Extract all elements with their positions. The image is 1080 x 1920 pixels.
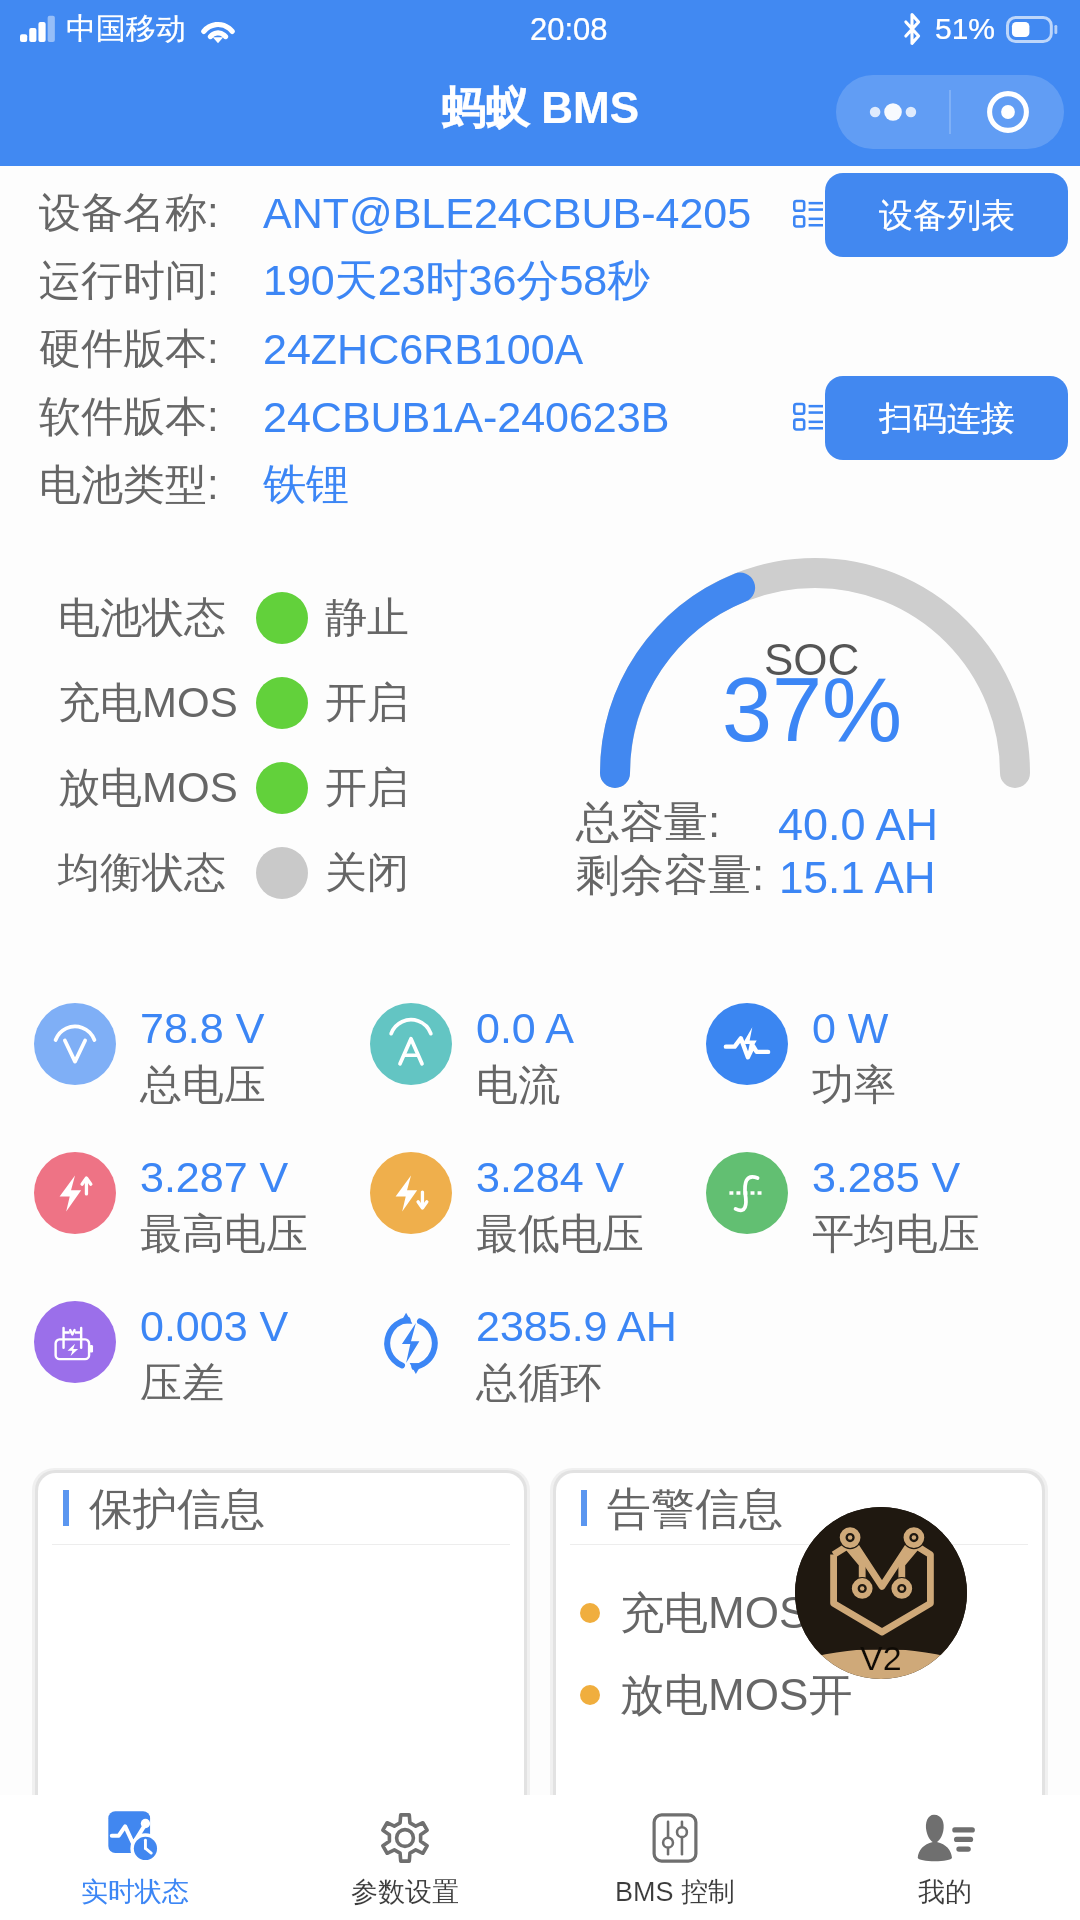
staticText: 运行时间:: [39, 255, 219, 308]
staticText: 铁锂: [263, 458, 349, 512]
button[interactable]: 最低电压: [370, 1152, 452, 1234]
staticText: 190天23时36分58秒: [263, 254, 651, 308]
staticText: 充电MOS开: [620, 1586, 853, 1641]
staticText: 蚂蚁 BMS: [441, 81, 639, 136]
staticText: V2: [860, 1639, 902, 1677]
button[interactable]: 总电压: [34, 1003, 116, 1085]
button[interactable]: 电流: [370, 1003, 452, 1085]
staticText: 40.0 AH: [778, 799, 939, 849]
staticText: 剩余容量:: [576, 848, 765, 903]
staticText: 压差: [140, 1357, 224, 1410]
staticText: 0 W: [812, 1004, 889, 1052]
staticText: 电池状态: [58, 592, 226, 645]
staticText: 总容量:: [576, 795, 721, 850]
staticText: 功率: [812, 1059, 896, 1112]
button[interactable]: 压差: [34, 1301, 116, 1383]
staticText: 扫码连接: [879, 397, 1015, 440]
staticText: 78.8 V: [140, 1004, 265, 1052]
staticText: 放电MOS开: [620, 1668, 853, 1723]
staticText: 3.284 V: [476, 1153, 625, 1201]
button[interactable]: 我的: [810, 1795, 1080, 1920]
button[interactable]: More options: [836, 75, 949, 149]
staticText: 电流: [476, 1059, 560, 1112]
staticText: 放电MOS: [58, 762, 238, 815]
staticText: 3.285 V: [812, 1153, 961, 1201]
staticText: 0.003 V: [140, 1302, 289, 1350]
staticText: 设备列表: [879, 194, 1015, 237]
staticText: 24ZHC6RB100A: [263, 325, 584, 373]
staticText: 设备名称:: [39, 187, 219, 240]
button[interactable]: 总循环: [370, 1301, 452, 1383]
staticText: 参数设置: [351, 1875, 459, 1909]
staticText: 保护信息: [89, 1482, 265, 1534]
staticText: 24CBUB1A-240623B: [263, 393, 670, 441]
button[interactable]: 参数设置: [270, 1795, 540, 1920]
button[interactable]: 平均电压: [706, 1152, 788, 1234]
staticText: 0.0 A: [476, 1004, 575, 1052]
staticText: 硬件版本:: [39, 323, 219, 376]
staticText: 37%: [722, 660, 903, 761]
staticText: 20:08: [530, 12, 608, 47]
staticText: 总电压: [140, 1059, 266, 1112]
staticText: 中国移动: [66, 10, 186, 48]
staticText: 51%: [935, 12, 996, 46]
staticText: 告警信息: [607, 1482, 783, 1534]
staticText: 均衡状态: [58, 847, 226, 900]
staticText: 平均电压: [812, 1208, 980, 1261]
staticText: 2385.9 AH: [476, 1302, 677, 1350]
staticText: BMS 控制: [615, 1875, 736, 1909]
button[interactable]: 最高电压: [34, 1152, 116, 1234]
staticText: ANT@BLE24CBUB-4205: [263, 189, 752, 237]
staticText: 电池类型:: [39, 459, 219, 512]
staticText: 充电MOS: [58, 677, 238, 730]
staticText: 总循环: [476, 1357, 602, 1410]
button[interactable]: 设备列表: [825, 173, 1068, 257]
button[interactable]: 功率: [706, 1003, 788, 1085]
staticText: 我的: [918, 1875, 972, 1909]
button[interactable]: 实时状态: [0, 1795, 270, 1920]
staticText: 软件版本:: [39, 391, 219, 444]
staticText: 开启: [325, 677, 409, 730]
staticText: 最低电压: [476, 1208, 644, 1261]
button[interactable]: BMS 控制: [540, 1795, 810, 1920]
button[interactable]: 扫码连接: [825, 376, 1068, 460]
button[interactable]: Close mini program: [951, 75, 1064, 149]
staticText: 实时状态: [81, 1875, 189, 1909]
staticText: 15.1 AH: [779, 853, 936, 902]
staticText: 开启: [325, 762, 409, 815]
staticText: 3.287 V: [140, 1153, 289, 1201]
staticText: 关闭: [325, 847, 409, 900]
staticText: 最高电压: [140, 1208, 308, 1261]
staticText: 静止: [325, 592, 409, 645]
staticText: SOC: [764, 635, 860, 684]
